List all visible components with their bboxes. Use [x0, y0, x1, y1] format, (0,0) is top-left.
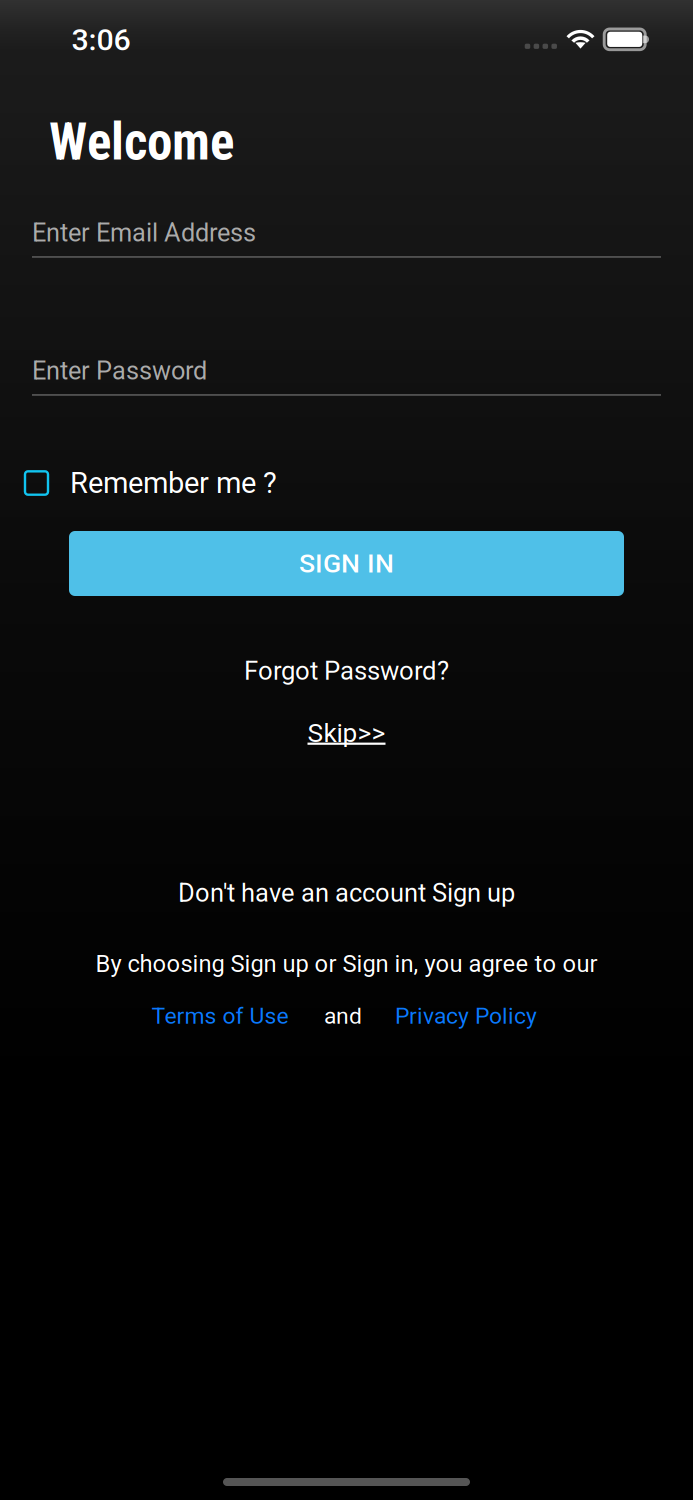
staticText: Enter Email Address	[32, 218, 256, 248]
staticText: Skip>>	[307, 718, 385, 748]
staticText: By choosing Sign up or Sign in, you agre…	[95, 950, 597, 978]
staticText: Don't have an account Sign up	[178, 878, 515, 908]
button[interactable]: SIGN IN	[69, 531, 624, 596]
button[interactable]: Forgot Password?	[0, 654, 693, 688]
staticText: Remember me ?	[70, 466, 277, 500]
staticText: and	[324, 1003, 362, 1029]
button[interactable]: Don't have an account Sign up	[0, 876, 693, 910]
staticText: Welcome	[49, 112, 234, 172]
staticText: 3:06	[71, 22, 130, 58]
button[interactable]: Enter Email Address	[32, 208, 661, 260]
staticText: Terms of Use	[151, 1003, 288, 1029]
button[interactable]: Terms of Use	[150, 999, 290, 1033]
button[interactable]: Skip>>	[0, 716, 693, 750]
staticText: Privacy Policy	[395, 1003, 537, 1029]
staticText: Forgot Password?	[244, 656, 449, 686]
button[interactable]: Privacy Policy	[391, 999, 541, 1033]
staticText: Enter Password	[32, 356, 207, 386]
staticText: SIGN IN	[299, 548, 394, 579]
button[interactable]: Remember me ?	[25, 463, 315, 503]
button[interactable]: Enter Password	[32, 346, 661, 398]
